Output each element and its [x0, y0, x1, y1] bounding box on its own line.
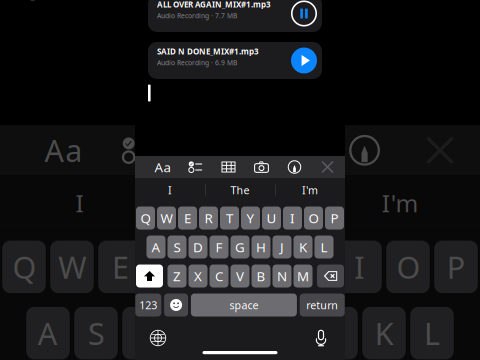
button[interactable]: SAID N DONE_MIX#1.mp3 [148, 42, 322, 79]
staticText: I'm [302, 183, 318, 197]
button[interactable]: V [230, 264, 249, 287]
button[interactable]: K [293, 235, 312, 258]
button[interactable]: Shift [136, 264, 163, 287]
button[interactable]: Next keyboard [145, 325, 171, 351]
button[interactable]: Dictation [308, 325, 334, 351]
button[interactable]: G [230, 235, 249, 258]
button[interactable]: Emoji keyboard [164, 293, 188, 316]
button[interactable]: P [325, 206, 344, 229]
button[interactable]: Checklist [179, 156, 212, 178]
button[interactable]: Aa [146, 156, 179, 178]
button[interactable]: I [135, 178, 205, 202]
button[interactable]: SAID N DONE_MIX#1.mp3 [148, 42, 322, 79]
staticText: X [194, 267, 202, 285]
button[interactable]: Z [167, 264, 186, 287]
button[interactable]: X [188, 264, 207, 287]
button[interactable]: Q [136, 206, 155, 229]
button[interactable]: S [167, 235, 186, 258]
staticText: V [236, 267, 244, 285]
button[interactable]: M [293, 264, 312, 287]
button[interactable]: T [220, 206, 239, 229]
button[interactable]: Shift [136, 264, 163, 287]
button[interactable]: Delete [317, 264, 344, 287]
button[interactable]: Camera [245, 156, 278, 178]
button[interactable]: F [209, 235, 228, 258]
button[interactable]: R [199, 206, 218, 229]
button[interactable]: N [272, 264, 291, 287]
button[interactable]: space [191, 293, 297, 316]
button[interactable]: S [167, 235, 186, 258]
button[interactable]: I'm [275, 178, 345, 202]
button[interactable]: W [157, 206, 176, 229]
button[interactable]: return [300, 293, 345, 316]
button[interactable]: J [272, 235, 291, 258]
button[interactable]: space [191, 293, 297, 316]
button[interactable]: Next keyboard [145, 325, 171, 351]
button[interactable]: ALL OVER AGAIN_MIX#1.mp3 [148, 0, 322, 32]
button[interactable]: E [178, 206, 197, 229]
button[interactable]: A [146, 235, 165, 258]
button[interactable]: V [230, 264, 249, 287]
button[interactable]: H [251, 235, 270, 258]
button[interactable]: A [146, 235, 165, 258]
button[interactable]: P [325, 206, 344, 229]
button[interactable]: I [135, 178, 205, 202]
button[interactable]: L [314, 235, 333, 258]
staticText: T [226, 209, 233, 227]
button[interactable]: B [251, 264, 270, 287]
button[interactable]: J [272, 235, 291, 258]
button[interactable]: D [188, 235, 207, 258]
button[interactable]: Q [136, 206, 155, 229]
button[interactable]: I [283, 206, 302, 229]
button[interactable]: L [314, 235, 333, 258]
button[interactable]: C [209, 264, 228, 287]
button[interactable]: I [283, 206, 302, 229]
button[interactable]: D [188, 235, 207, 258]
button[interactable]: Emoji keyboard [164, 293, 188, 316]
button[interactable]: E [178, 206, 197, 229]
button[interactable]: C [209, 264, 228, 287]
button[interactable]: N [272, 264, 291, 287]
button[interactable]: Z [167, 264, 186, 287]
button[interactable]: The [205, 178, 275, 202]
button[interactable]: T [220, 206, 239, 229]
button[interactable]: 123 [135, 293, 161, 316]
staticText: Aa [154, 158, 170, 176]
button[interactable]: G [230, 235, 249, 258]
button[interactable]: Dictation [308, 325, 334, 351]
button[interactable]: Close [311, 156, 344, 178]
button[interactable]: X [188, 264, 207, 287]
button[interactable]: F [209, 235, 228, 258]
button[interactable]: Markup [278, 156, 311, 178]
button[interactable]: Checklist [179, 156, 212, 178]
button[interactable]: Close [311, 156, 344, 178]
button[interactable]: I'm [275, 178, 345, 202]
staticText: A [151, 238, 160, 256]
button[interactable]: The [205, 178, 275, 202]
button[interactable]: Table [212, 156, 245, 178]
button[interactable]: Markup [278, 156, 311, 178]
button[interactable]: M [293, 264, 312, 287]
button[interactable]: Y [241, 206, 260, 229]
staticText: B [256, 267, 265, 285]
button[interactable]: O [304, 206, 323, 229]
button[interactable]: K [293, 235, 312, 258]
button[interactable]: B [251, 264, 270, 287]
button[interactable]: Aa [146, 156, 179, 178]
button[interactable]: R [199, 206, 218, 229]
button[interactable]: H [251, 235, 270, 258]
button[interactable]: 123 [135, 293, 161, 316]
button[interactable]: W [157, 206, 176, 229]
button[interactable]: U [262, 206, 281, 229]
button[interactable]: O [304, 206, 323, 229]
button[interactable]: U [262, 206, 281, 229]
staticText: SAID N DONE_MIX#1.mp3 [157, 46, 259, 57]
button[interactable]: ALL OVER AGAIN_MIX#1.mp3 [148, 0, 322, 32]
button[interactable]: Delete [317, 264, 344, 287]
button[interactable]: Camera [245, 156, 278, 178]
button[interactable]: Table [212, 156, 245, 178]
staticText: U [266, 209, 276, 227]
staticText: Audio Recording · 6.9 MB [157, 58, 237, 67]
button[interactable]: return [300, 293, 345, 316]
button[interactable]: Y [241, 206, 260, 229]
